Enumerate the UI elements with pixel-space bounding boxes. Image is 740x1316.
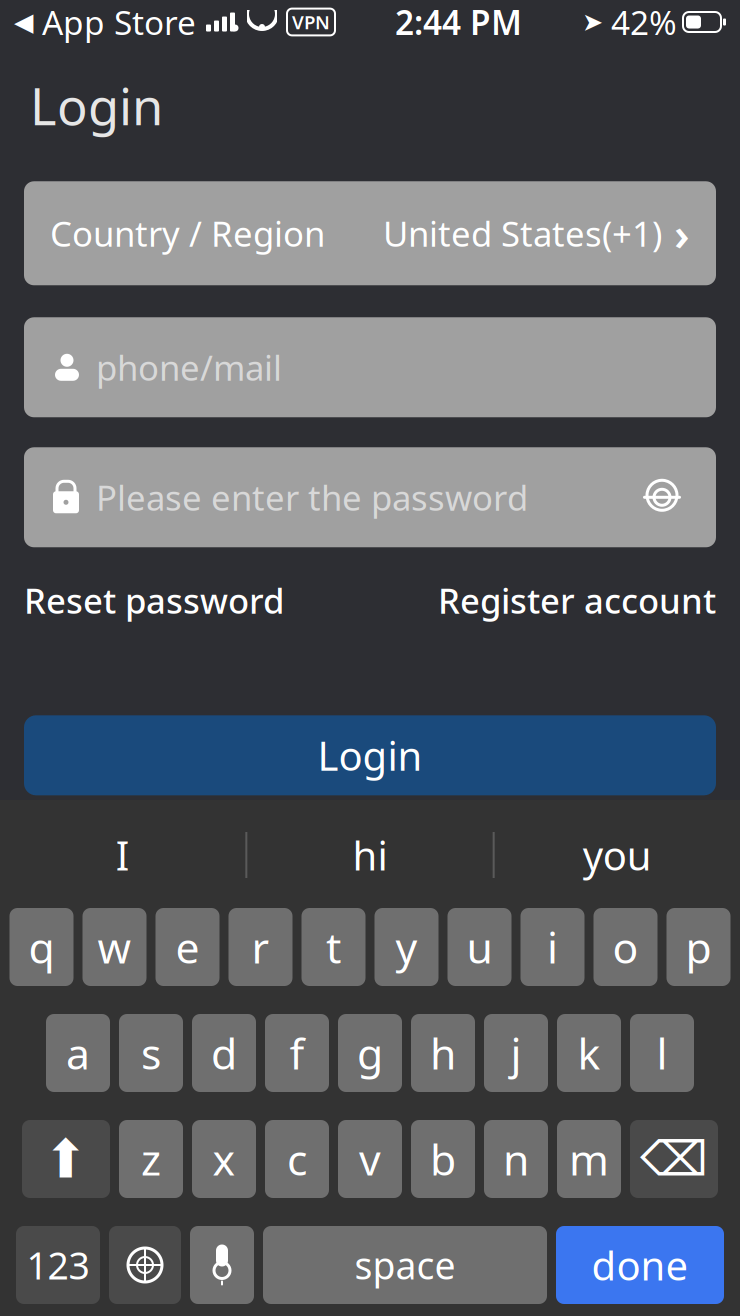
button[interactable]: Show password (634, 469, 690, 525)
button[interactable]: r (228, 908, 292, 986)
staticText: l (656, 1025, 667, 1081)
button[interactable]: o (593, 908, 657, 986)
staticText: Login (317, 729, 422, 782)
button[interactable]: hi (247, 816, 493, 894)
button[interactable]: x (192, 1120, 256, 1198)
button[interactable]: phone/mail (24, 317, 716, 417)
button[interactable]: i (520, 908, 584, 986)
staticText: x (212, 1131, 235, 1187)
button[interactable]: k (557, 1014, 621, 1092)
button[interactable]: h (411, 1014, 475, 1092)
staticText: United States(+1) (383, 210, 662, 256)
button[interactable]: a (46, 1014, 110, 1092)
button[interactable]: y (374, 908, 438, 986)
staticText: ⌫ (640, 1132, 708, 1186)
button[interactable]: v (338, 1120, 402, 1198)
staticText: I (116, 828, 130, 881)
button[interactable]: g (338, 1014, 402, 1092)
staticText: r (251, 919, 269, 975)
button[interactable]: you (495, 816, 740, 894)
staticText: u (466, 919, 492, 975)
staticText: Country / Region (50, 210, 325, 256)
staticText: ⬆ (43, 1129, 88, 1189)
button[interactable]: 123 (16, 1226, 100, 1304)
staticText: 123 (26, 1240, 89, 1290)
staticText: b (430, 1131, 456, 1187)
button[interactable]: e (155, 908, 219, 986)
staticText: a (66, 1025, 90, 1081)
staticText: ➤ (582, 8, 603, 36)
button[interactable]: Next keyboard (109, 1226, 181, 1304)
staticText: k (577, 1025, 600, 1081)
staticText: space (354, 1240, 455, 1290)
staticText: i (547, 919, 558, 975)
button[interactable]: f (265, 1014, 329, 1092)
staticText: Register account (438, 577, 716, 623)
button[interactable]: w (82, 908, 146, 986)
staticText: Login (30, 72, 163, 139)
button[interactable]: d (192, 1014, 256, 1092)
button[interactable]: s (119, 1014, 183, 1092)
staticText: e (175, 919, 199, 975)
staticText: done (591, 1238, 688, 1291)
staticText: z (141, 1131, 161, 1187)
button[interactable]: Delete (630, 1120, 718, 1198)
button[interactable]: t (301, 908, 365, 986)
staticText: › (674, 203, 690, 263)
staticText: v (359, 1131, 381, 1187)
button[interactable]: Country / Region (24, 181, 716, 285)
staticText: w (97, 919, 131, 975)
button[interactable]: Other login (24, 821, 716, 901)
button[interactable]: done (556, 1226, 724, 1304)
staticText: 2:44 PM (395, 0, 522, 44)
button[interactable]: p (666, 908, 730, 986)
button[interactable]: q (9, 908, 73, 986)
staticText: c (287, 1131, 307, 1187)
button[interactable]: Register account (438, 577, 716, 623)
button[interactable]: Reset password (24, 577, 284, 623)
button[interactable]: Shift (22, 1120, 110, 1198)
staticText: h (430, 1025, 456, 1081)
button[interactable]: u (447, 908, 511, 986)
button[interactable]: z (119, 1120, 183, 1198)
staticText: phone/mail (96, 344, 282, 390)
staticText: y (395, 919, 417, 975)
staticText: m (569, 1131, 609, 1187)
button[interactable]: j (484, 1014, 548, 1092)
staticText: d (211, 1025, 237, 1081)
staticText: App Store (33, 0, 196, 44)
staticText: j (510, 1025, 521, 1081)
button[interactable]: Login (24, 715, 716, 795)
staticText: Reset password (24, 577, 284, 623)
staticText: VPN (292, 10, 330, 34)
staticText: q (28, 919, 54, 975)
staticText: you (583, 828, 652, 881)
button[interactable]: m (557, 1120, 621, 1198)
staticText: 42% (611, 0, 677, 44)
staticText: o (612, 919, 638, 975)
button[interactable]: Dictation (190, 1226, 254, 1304)
button[interactable]: I (0, 816, 245, 894)
staticText: Please enter the password (96, 474, 528, 520)
staticText: f (289, 1025, 304, 1081)
button[interactable]: n (484, 1120, 548, 1198)
staticText: s (141, 1025, 161, 1081)
staticText: g (357, 1025, 383, 1081)
staticText: p (685, 919, 711, 975)
button[interactable]: l (630, 1014, 694, 1092)
staticText: t (326, 919, 341, 975)
button[interactable]: space (263, 1226, 547, 1304)
staticText: ◀ (14, 8, 33, 36)
button[interactable]: c (265, 1120, 329, 1198)
staticText: n (503, 1131, 529, 1187)
button[interactable]: b (411, 1120, 475, 1198)
staticText: hi (352, 828, 387, 881)
